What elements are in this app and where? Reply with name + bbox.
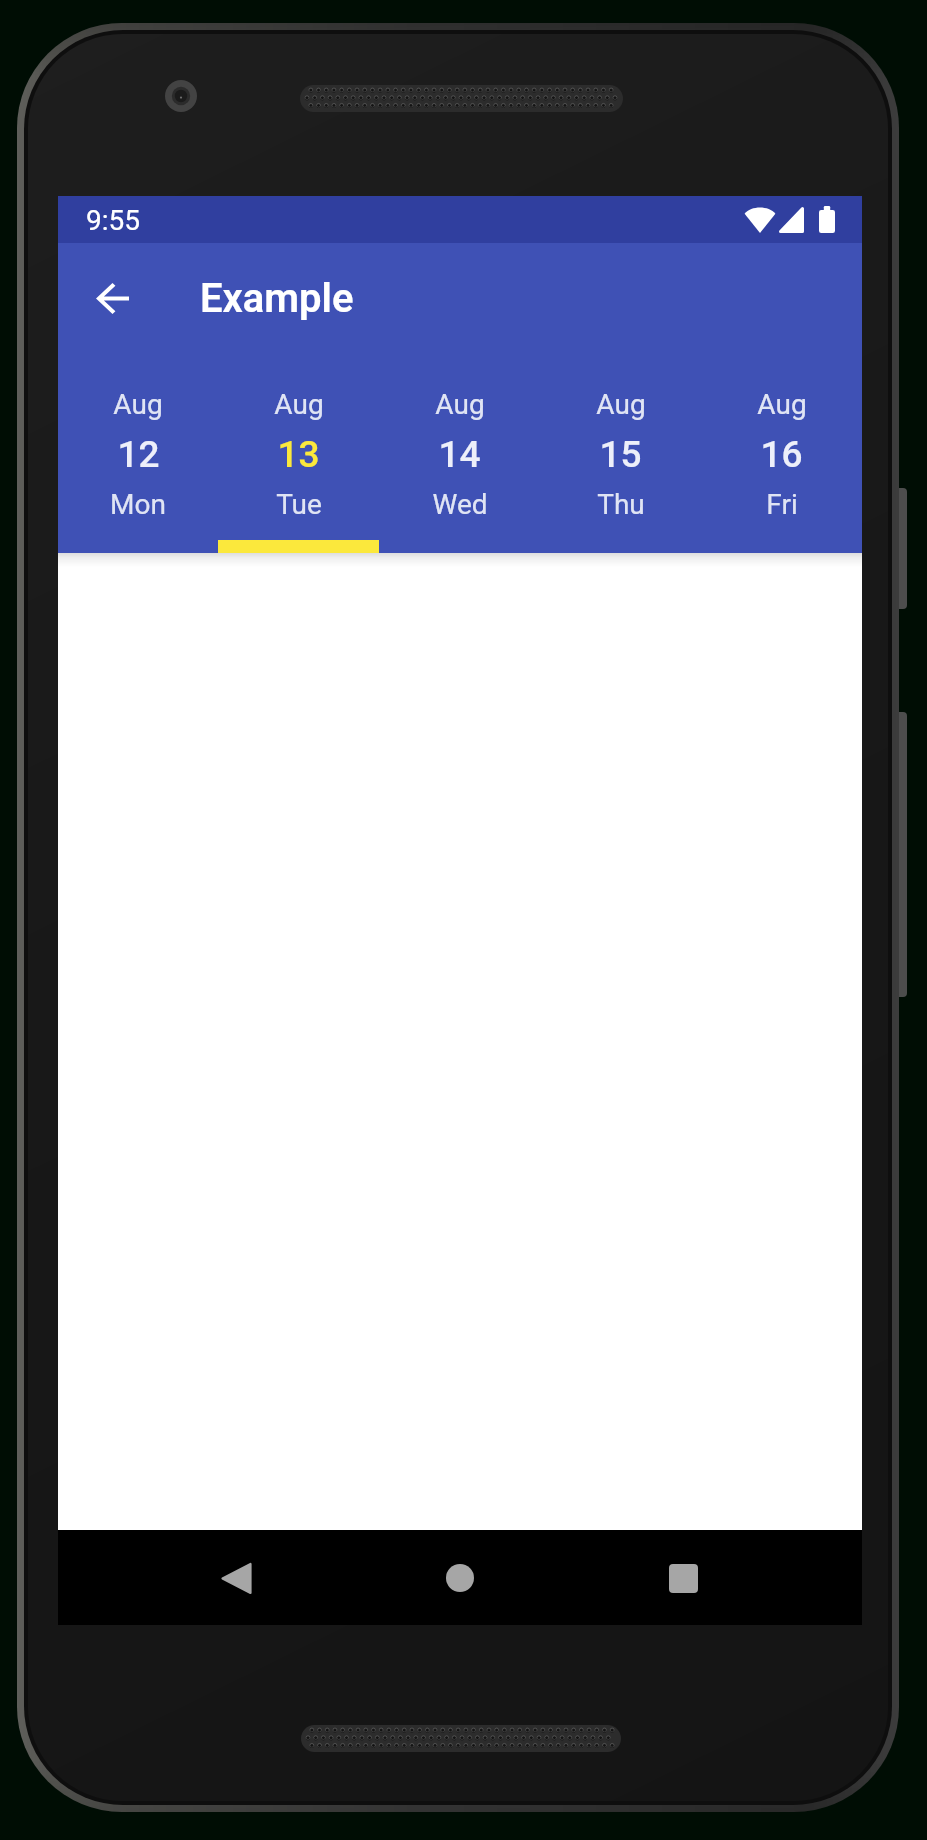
staticText: Aug bbox=[596, 388, 646, 421]
staticText: Aug bbox=[757, 388, 807, 421]
button[interactable]: Back bbox=[201, 1543, 271, 1613]
staticText: Example bbox=[200, 275, 354, 322]
button[interactable]: Aug bbox=[58, 354, 218, 553]
staticText: 15 bbox=[599, 433, 642, 476]
button[interactable]: Aug bbox=[379, 354, 540, 553]
button[interactable]: Aug bbox=[701, 354, 862, 553]
staticText: Fri bbox=[766, 488, 798, 521]
staticText: 16 bbox=[760, 433, 803, 476]
staticText: Tue bbox=[276, 488, 322, 521]
button[interactable]: Navigate up bbox=[76, 262, 148, 334]
staticText: Aug bbox=[435, 388, 485, 421]
staticText: Aug bbox=[113, 388, 163, 421]
staticText: Wed bbox=[432, 488, 488, 521]
staticText: 13 bbox=[277, 433, 320, 476]
staticText: 14 bbox=[438, 433, 481, 476]
staticText: Mon bbox=[110, 488, 166, 521]
button[interactable]: Aug bbox=[540, 354, 701, 553]
staticText: 9:55 bbox=[86, 204, 140, 237]
staticText: Aug bbox=[274, 388, 324, 421]
staticText: Thu bbox=[597, 488, 645, 521]
staticText: 12 bbox=[117, 433, 160, 476]
button[interactable]: Aug bbox=[218, 354, 379, 553]
button[interactable]: Recent apps bbox=[648, 1543, 718, 1613]
button[interactable]: Home bbox=[425, 1543, 495, 1613]
